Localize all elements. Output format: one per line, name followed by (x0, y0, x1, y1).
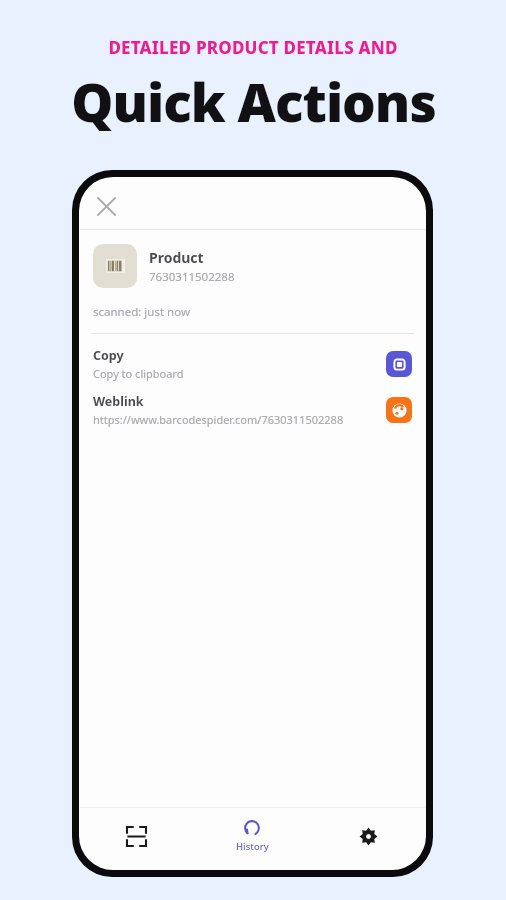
staticText: Weblink (93, 393, 144, 410)
staticText: scanned: just now (93, 304, 190, 320)
button[interactable]: Copy (79, 345, 426, 383)
staticText: 7630311502288 (149, 269, 235, 285)
button[interactable]: Open weblink (386, 397, 412, 423)
staticText: Copy to clipboard (93, 366, 184, 381)
staticText: History (236, 840, 269, 853)
staticText: https://www.barcodespider.com/7630311502… (93, 412, 344, 427)
button[interactable]: Copy to clipboard (386, 351, 412, 377)
button[interactable]: Product (79, 230, 426, 294)
button[interactable]: History (194, 808, 310, 864)
staticText: Quick Actions (71, 65, 436, 137)
button[interactable]: Scan barcode (79, 808, 194, 864)
button[interactable]: Close (89, 189, 123, 223)
staticText: DETAILED PRODUCT DETAILS AND (108, 36, 398, 59)
button[interactable]: Weblink (79, 391, 426, 429)
staticText: Product (149, 248, 204, 267)
button[interactable]: Settings (310, 808, 426, 864)
staticText: Copy (93, 347, 124, 364)
